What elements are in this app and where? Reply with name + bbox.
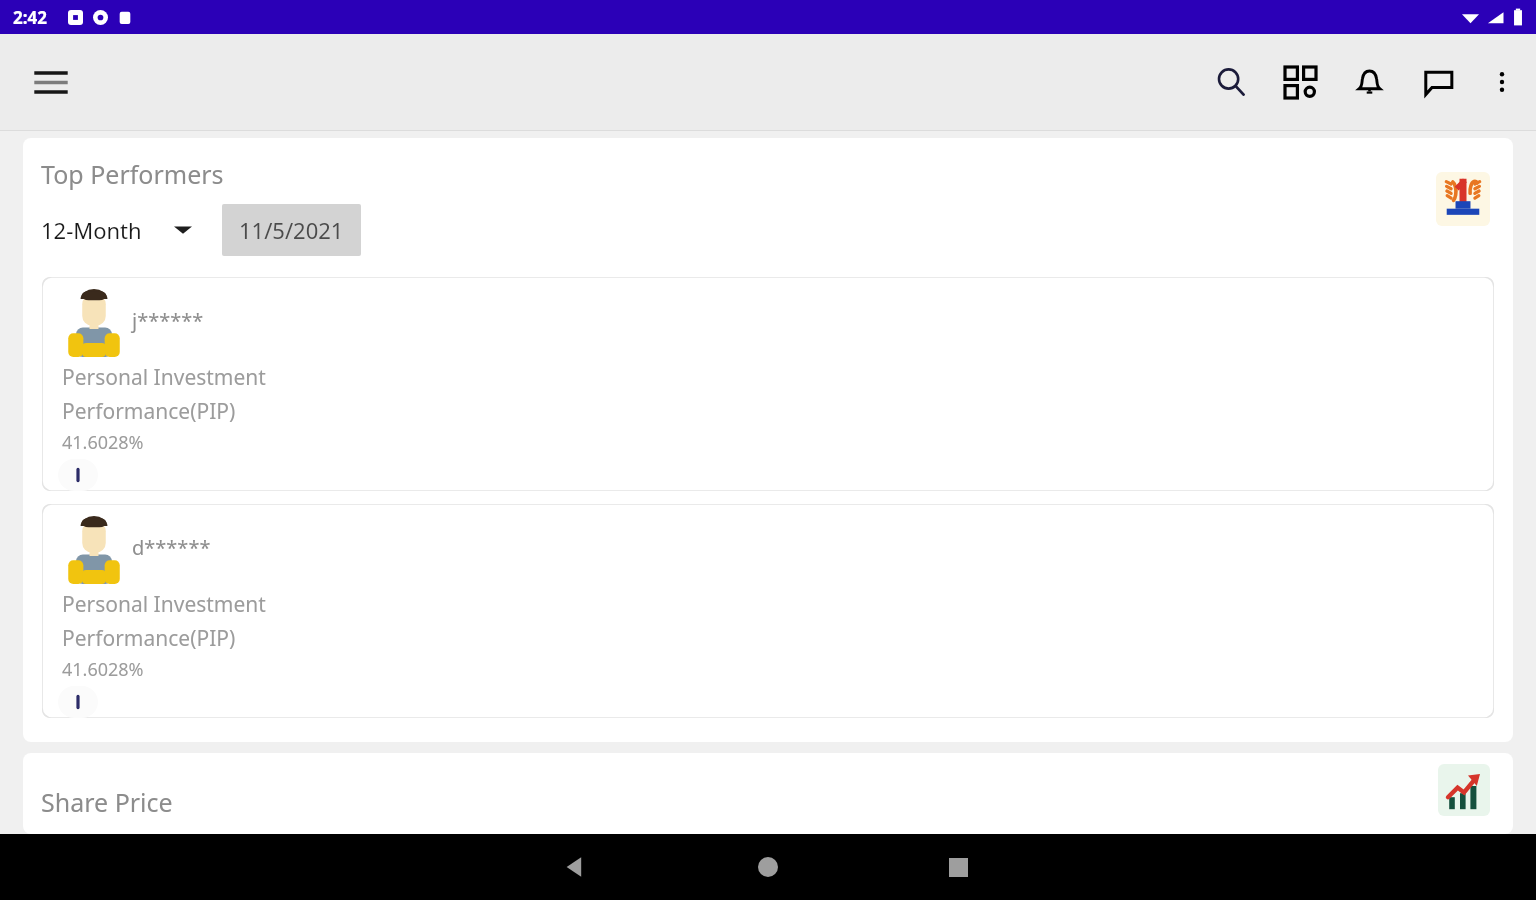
staticText: Share Price bbox=[41, 785, 173, 819]
button[interactable]: Search bbox=[1205, 56, 1257, 108]
button[interactable]: Recent apps bbox=[926, 835, 990, 899]
staticText: Performance(PIP) bbox=[62, 624, 236, 653]
button[interactable]: Apps bbox=[1274, 56, 1326, 108]
button[interactable]: Back bbox=[543, 835, 607, 899]
button[interactable]: Rank 1 bbox=[1436, 172, 1490, 226]
button[interactable]: Details bbox=[58, 686, 98, 718]
staticText: Performance(PIP) bbox=[62, 397, 236, 426]
staticText: 41.6028% bbox=[62, 657, 144, 682]
button[interactable]: Notifications bbox=[1343, 56, 1395, 108]
staticText: d****** bbox=[132, 534, 211, 561]
button[interactable]: d****** bbox=[42, 504, 1494, 718]
staticText: Personal Investment bbox=[62, 590, 266, 619]
staticText: 41.6028% bbox=[62, 430, 144, 455]
button[interactable]: Share Price bbox=[23, 753, 1513, 834]
button[interactable]: 11/5/2021 bbox=[222, 204, 361, 256]
button[interactable]: Messages bbox=[1412, 56, 1464, 108]
button[interactable]: Home bbox=[736, 835, 800, 899]
button[interactable]: j****** bbox=[42, 277, 1494, 491]
staticText: 2:42 bbox=[13, 6, 47, 29]
staticText: Personal Investment bbox=[62, 363, 266, 392]
button[interactable]: Menu bbox=[24, 55, 78, 109]
button[interactable]: More options bbox=[1476, 56, 1528, 108]
staticText: Top Performers bbox=[41, 157, 224, 191]
button[interactable]: 12-Month bbox=[35, 207, 198, 253]
staticText: 11/5/2021 bbox=[239, 215, 344, 245]
staticText: 12-Month bbox=[41, 215, 142, 245]
staticText: j****** bbox=[132, 307, 204, 334]
button[interactable]: Details bbox=[58, 459, 98, 491]
